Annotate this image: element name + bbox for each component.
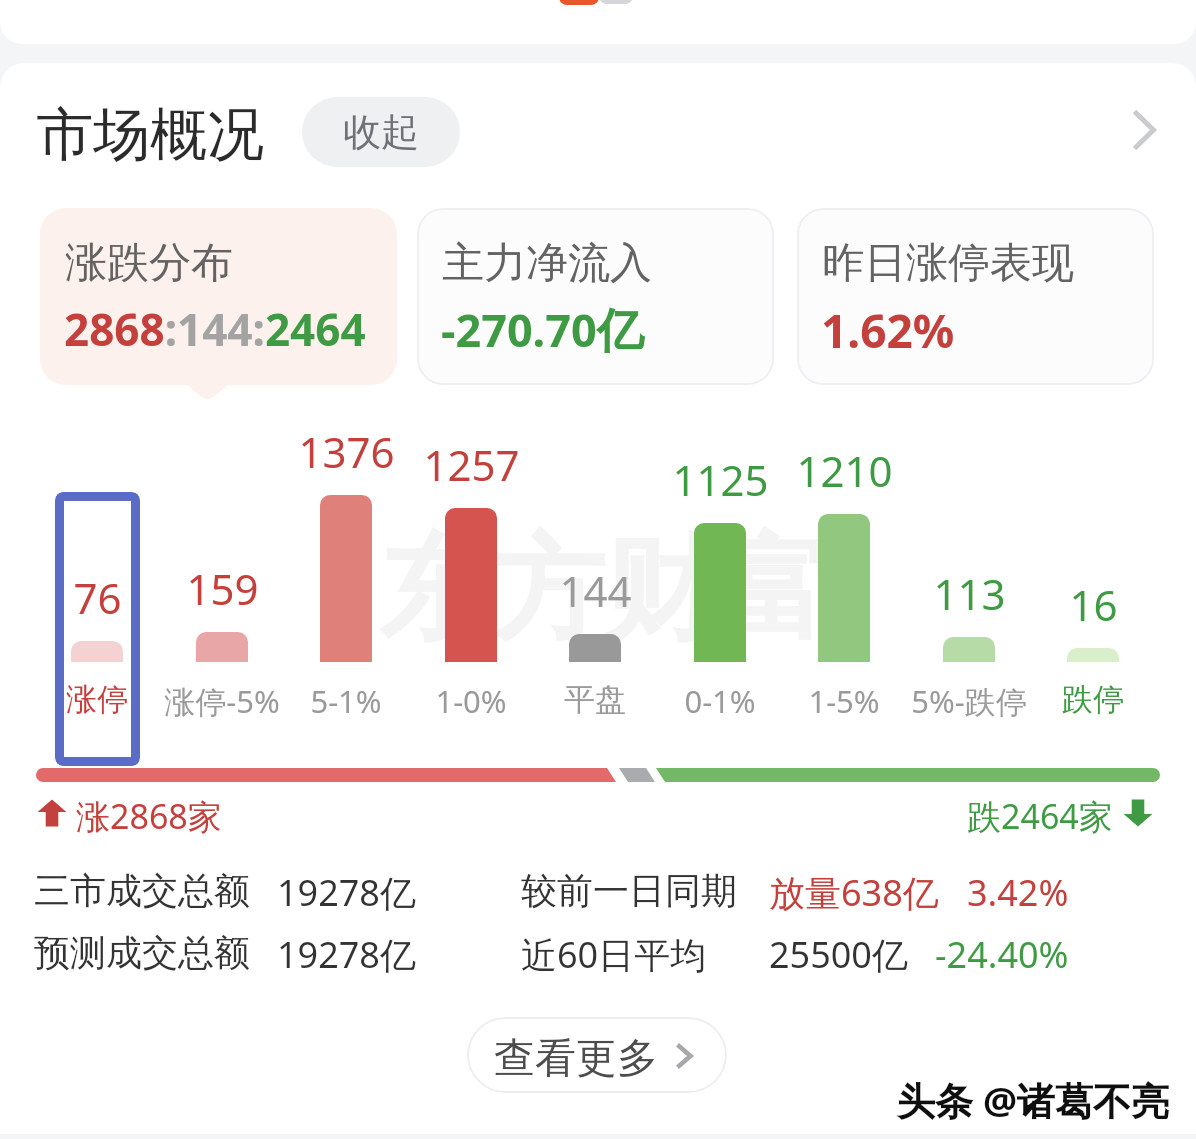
staticText: -270.70亿: [441, 299, 644, 361]
staticText: 预测成交总额: [34, 930, 250, 975]
staticText: 1257: [423, 436, 520, 493]
button[interactable]: 展开市场概况: [1104, 92, 1180, 172]
staticText: 19278亿: [277, 930, 416, 979]
staticText: 1125: [672, 451, 769, 508]
staticText: 跌停: [1062, 680, 1124, 719]
button[interactable]: 涨停 76: [55, 492, 140, 766]
staticText: 1-5%: [808, 680, 880, 722]
staticText: 5%-跌停: [911, 680, 1027, 722]
staticText: 16: [1069, 576, 1118, 633]
staticText: 涨停-5%: [164, 680, 280, 722]
staticText: 跌2464家: [967, 793, 1113, 839]
staticText: 查看更多: [494, 1033, 658, 1085]
staticText: 涨2868家: [76, 793, 222, 839]
staticText: 三市成交总额: [34, 868, 250, 913]
staticText: 放量638亿: [769, 868, 939, 917]
staticText: 144: [559, 562, 632, 619]
staticText: 1376: [298, 423, 395, 480]
staticText: 2868:144:2464: [64, 299, 366, 359]
staticText: 5-1%: [310, 680, 382, 722]
staticText: 收起: [343, 108, 419, 156]
staticText: 25500亿: [769, 930, 908, 979]
button[interactable]: 昨日涨停表现: [797, 208, 1154, 385]
button[interactable]: 涨跌分布: [40, 208, 397, 385]
staticText: 0-1%: [684, 680, 756, 722]
staticText: 平盘: [564, 680, 626, 719]
staticText: 主力净流入: [442, 237, 652, 290]
staticText: 昨日涨停表现: [822, 237, 1074, 290]
staticText: 市场概况: [36, 99, 264, 171]
staticText: 3.42%: [967, 868, 1069, 917]
staticText: 1-0%: [435, 680, 507, 722]
staticText: 较前一日同期: [521, 868, 737, 913]
staticText: 涨跌分布: [65, 237, 233, 290]
staticText: 东方财富: [379, 519, 831, 661]
staticText: 113: [933, 565, 1006, 622]
staticText: 涨停: [66, 680, 128, 719]
staticText: 76: [73, 569, 122, 626]
staticText: 近60日平均: [521, 930, 707, 979]
button[interactable]: 查看更多: [467, 1017, 727, 1093]
button[interactable]: 收起: [302, 97, 460, 167]
staticText: -24.40%: [935, 930, 1069, 979]
staticText: 159: [186, 560, 259, 617]
staticText: 头条 @诸葛不亮: [897, 1074, 1170, 1126]
staticText: 19278亿: [277, 868, 416, 917]
button[interactable]: 主力净流入: [417, 208, 774, 385]
staticText: 1.62%: [821, 299, 955, 362]
staticText: 1210: [796, 442, 893, 499]
